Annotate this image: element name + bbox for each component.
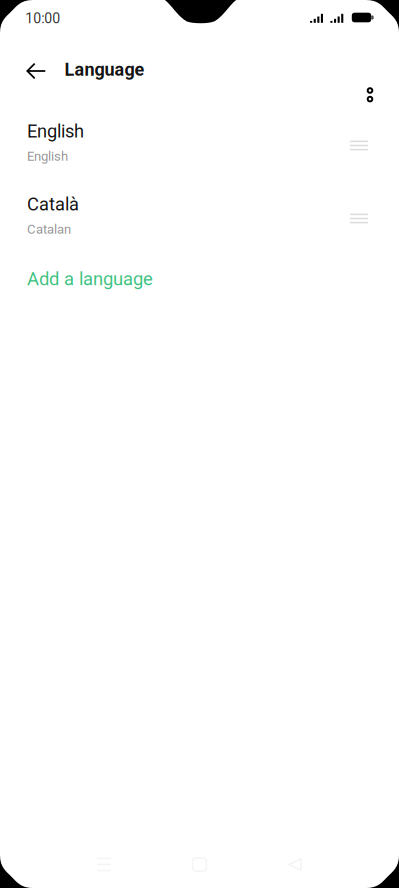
staticText: Add a language — [27, 268, 153, 290]
button[interactable]: English — [0, 107, 399, 180]
staticText: Català — [27, 194, 79, 215]
staticText: 10:00 — [25, 10, 60, 27]
button[interactable]: Català — [0, 180, 399, 253]
button[interactable]: Back — [14, 39, 58, 103]
button[interactable]: Add a language — [0, 253, 399, 309]
staticText: English — [27, 149, 68, 164]
staticText: English — [27, 121, 84, 142]
staticText: Catalan — [27, 222, 71, 237]
staticText: Language — [64, 59, 144, 80]
button[interactable]: More options — [348, 39, 392, 103]
